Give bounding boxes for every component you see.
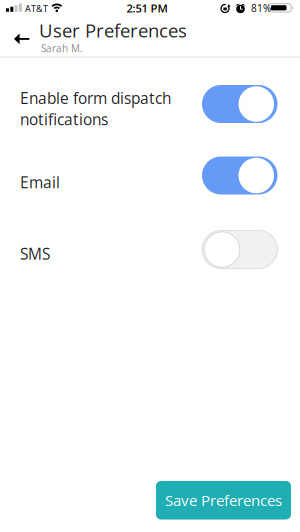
staticText: SMS [20,243,50,264]
button[interactable]: Enable form dispatch notifications [202,85,277,123]
staticText: Email [20,172,60,193]
button[interactable]: SMS [202,230,277,268]
staticText: notifications [20,109,108,130]
staticText: User Preferences [39,18,187,43]
staticText: 81% [251,1,271,15]
staticText: Sarah M. [41,41,83,55]
button[interactable]: Back [4,21,38,57]
button[interactable]: Email [202,156,277,194]
button[interactable]: Save Preferences [156,481,291,519]
staticText: Enable form dispatch [20,87,171,109]
staticText: Save Preferences [165,490,282,510]
staticText: AT&T [25,2,48,14]
staticText: 2:51 PM [126,0,167,16]
